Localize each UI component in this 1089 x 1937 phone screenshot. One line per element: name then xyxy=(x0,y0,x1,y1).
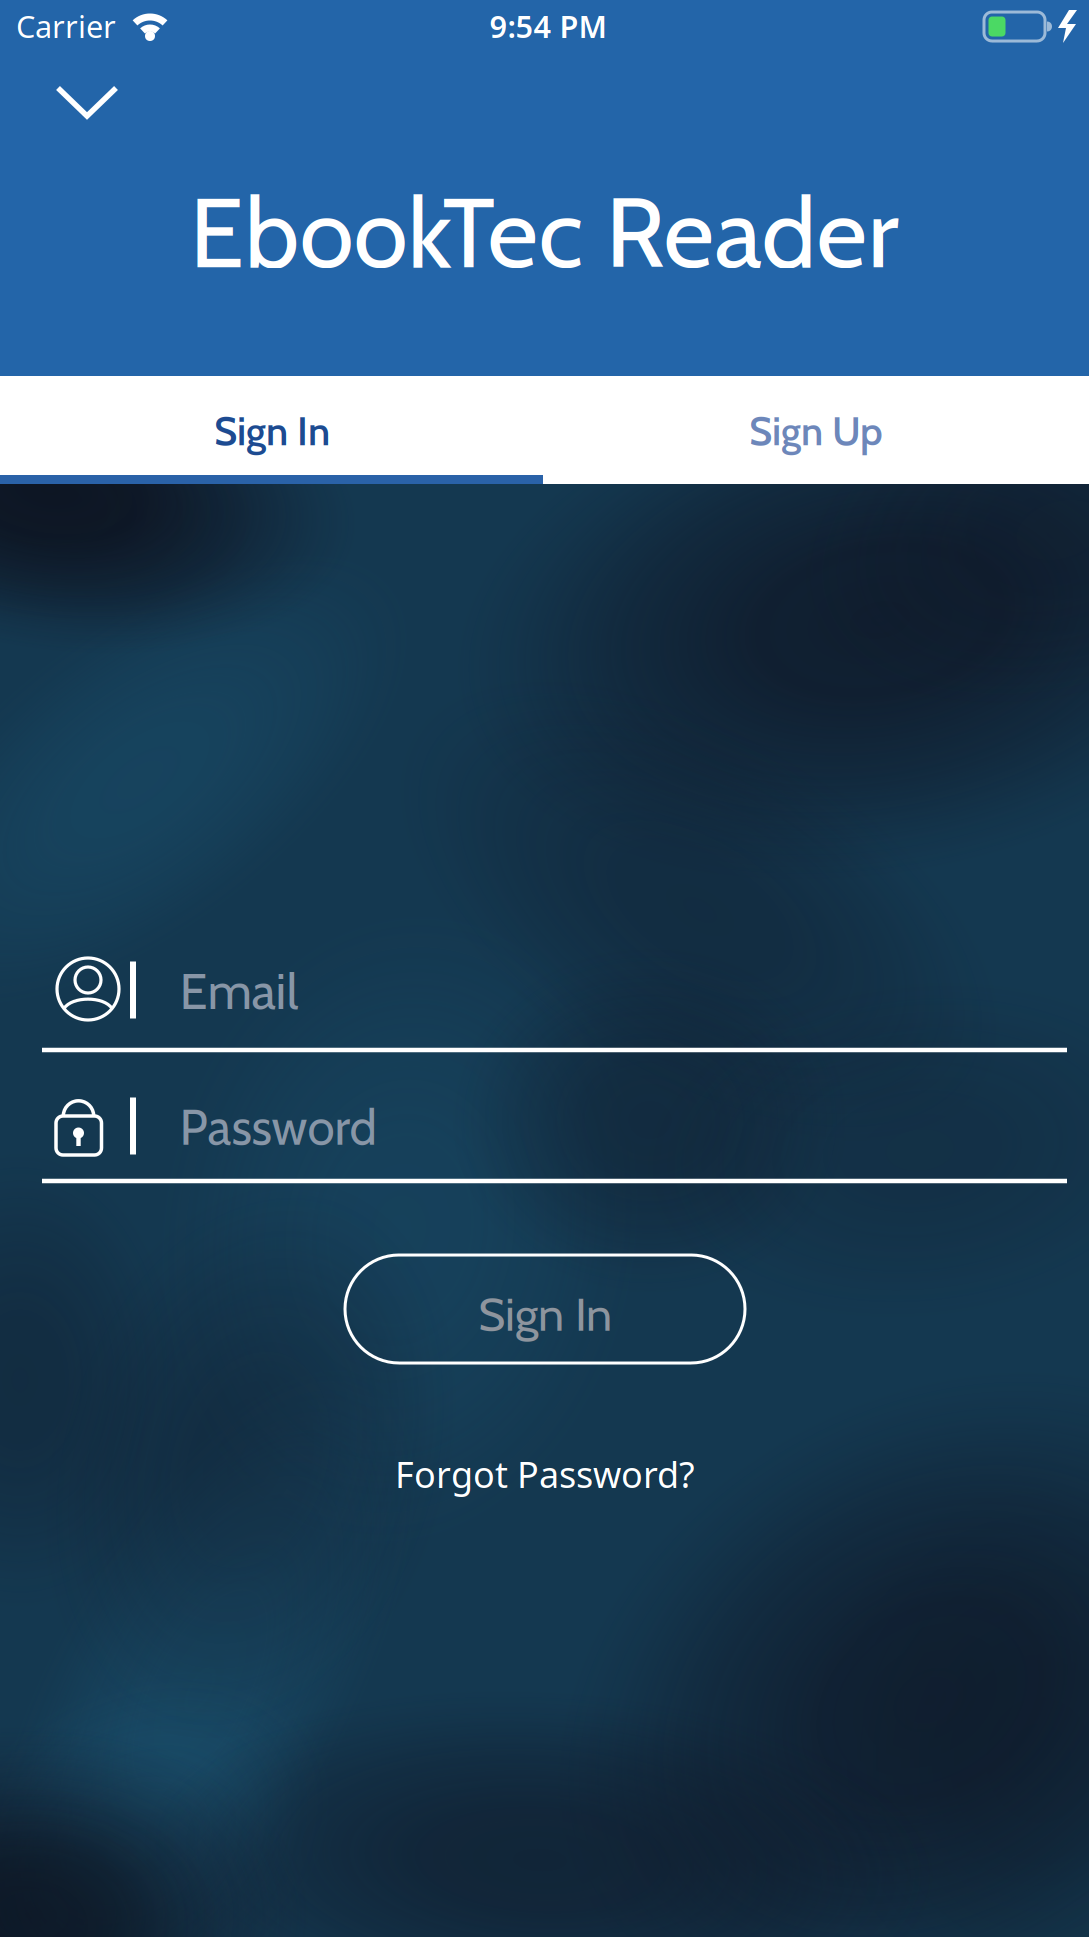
button[interactable]: Password xyxy=(0,1077,1089,1197)
button[interactable]: Dismiss xyxy=(27,52,147,152)
staticText: Sign Up xyxy=(749,407,883,455)
button[interactable]: Forgot Password? xyxy=(365,1439,725,1509)
button[interactable]: Sign In xyxy=(0,379,544,483)
button[interactable]: Sign Up xyxy=(543,379,1088,483)
staticText: Carrier xyxy=(16,6,116,46)
staticText: Sign In xyxy=(214,407,330,455)
staticText: EbookTec Reader xyxy=(189,172,898,292)
staticText: Sign In xyxy=(478,1286,612,1342)
button[interactable]: Email xyxy=(0,940,1089,1060)
staticText: 9:54 PM xyxy=(489,6,606,46)
button[interactable]: Sign In xyxy=(342,1252,748,1366)
staticText: Forgot Password? xyxy=(395,1450,695,1498)
staticText: Email xyxy=(179,960,298,1022)
staticText: Password xyxy=(179,1097,376,1157)
